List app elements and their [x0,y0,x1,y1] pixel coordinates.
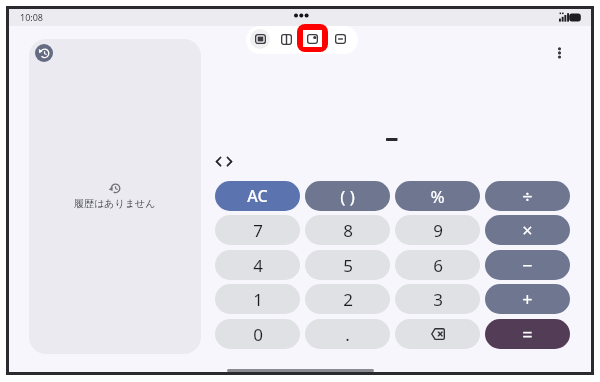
button[interactable]: × [485,215,570,245]
button[interactable]: . [305,319,390,349]
button[interactable]: Picture in picture [297,24,328,52]
button[interactable]: 4 [215,250,300,280]
staticText: 9 [433,219,443,242]
button[interactable]: = [485,319,570,349]
button[interactable]: % [395,181,480,211]
button[interactable]: + [485,284,570,314]
button[interactable]: ( ) [305,181,390,211]
staticText: 2 [343,288,353,311]
staticText: 3 [433,288,443,311]
staticText: % [430,185,445,208]
staticText: 7 [253,219,263,242]
staticText: 1 [253,288,263,311]
staticText: 8 [343,219,353,242]
button[interactable]: Split screen [276,29,296,49]
button[interactable]: AC [215,181,300,211]
button[interactable]: Full screen [250,29,270,49]
staticText: 10:08 [20,11,44,23]
staticText: × [522,218,533,243]
button[interactable]: 2 [305,284,390,314]
staticText: ( ) [340,185,355,208]
button[interactable]: 6 [395,250,480,280]
button[interactable]: Move cursor left [213,154,224,170]
button[interactable]: − [485,250,570,280]
button[interactable]: 0 [215,319,300,349]
button[interactable]: ÷ [485,181,570,211]
button[interactable]: 9 [395,215,480,245]
button[interactable]: More options [549,43,569,63]
staticText: 履歴はありません [74,197,156,210]
staticText: AC [247,185,268,207]
staticText: ÷ [522,184,533,209]
staticText: 6 [433,254,443,277]
staticText: + [522,287,533,312]
staticText: . [345,323,350,346]
button[interactable]: History [35,44,53,62]
button[interactable]: 8 [305,215,390,245]
button[interactable]: 3 [395,284,480,314]
button[interactable]: Move cursor right [224,154,235,170]
button[interactable]: 5 [305,250,390,280]
staticText: = [522,322,533,347]
staticText: 0 [253,323,263,346]
staticText: − [522,253,533,278]
staticText: 4 [253,254,263,277]
button[interactable]: 1 [215,284,300,314]
button[interactable]: Backspace [395,319,480,349]
button[interactable]: 7 [215,215,300,245]
staticText: 5 [343,254,353,277]
button[interactable]: Minimize [330,29,350,49]
